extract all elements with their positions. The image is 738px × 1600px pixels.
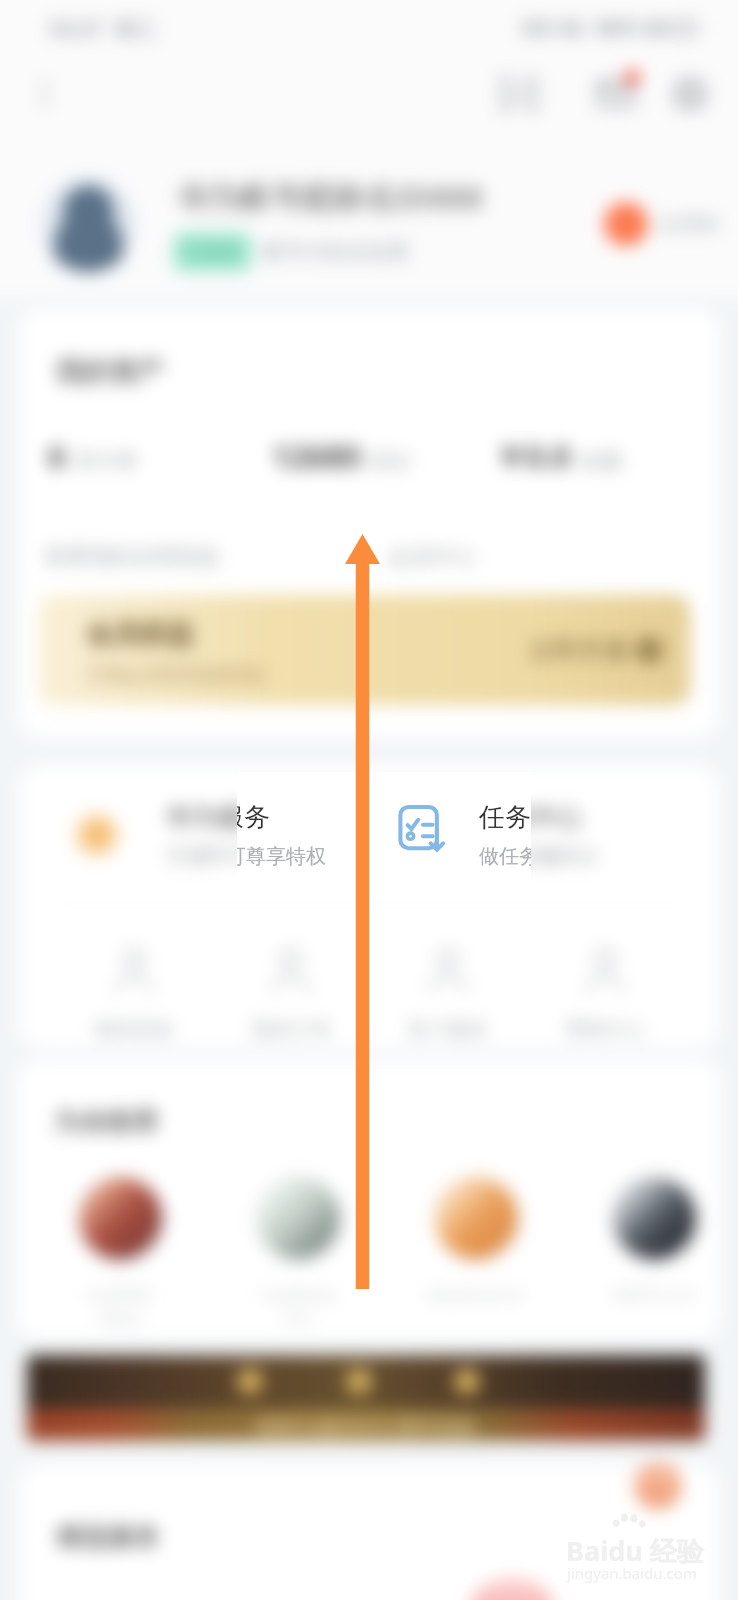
- staticText: 会员中心: [388, 543, 476, 571]
- staticText: 领券立减300元 限时抢购: [256, 1412, 476, 1439]
- staticText: jingyan.baidu.com: [567, 1563, 697, 1583]
- staticText: 为你推荐: [54, 1106, 158, 1139]
- button[interactable]: ￥0.0: [495, 435, 718, 477]
- button[interactable]: Settings: [664, 68, 716, 120]
- staticText: Baidu 经验: [566, 1532, 704, 1569]
- staticText: 余额: [580, 448, 622, 474]
- staticText: 6: [48, 435, 66, 477]
- staticText: 张卡券: [75, 448, 138, 474]
- staticText: 积分: [370, 448, 412, 474]
- button[interactable]: 618 promotion banner: [27, 1355, 705, 1441]
- staticText: 12680: [272, 435, 361, 477]
- staticText: 开通会员尊享超值特权: [86, 664, 266, 687]
- button[interactable]: FreeBuds Pro: [248, 1170, 348, 1329]
- staticText: 华为帐号昵称名ID888: [178, 176, 483, 218]
- staticText: 做任务赚积分: [479, 844, 599, 869]
- button[interactable]: 查看我的全部权益: [42, 543, 222, 571]
- staticText: 帮助中心: [565, 1017, 645, 1042]
- staticText: ￥0.0: [495, 435, 571, 477]
- button[interactable]: 华为服务: [20, 766, 369, 904]
- button[interactable]: 华为服务: [20, 766, 369, 904]
- staticText: 开通即可尊享特权: [166, 844, 326, 869]
- staticText: HD 4G WiFi 68: [521, 14, 668, 43]
- staticText: 华为服务: [166, 801, 270, 834]
- button[interactable]: 会员中心: [388, 543, 476, 571]
- staticText: 帐号与安全设置: [263, 239, 410, 265]
- staticText: 做任务赚积分: [479, 844, 599, 869]
- button[interactable]: 我的设备: [55, 941, 212, 1046]
- staticText: 我的资产: [56, 355, 164, 389]
- staticText: 10:27 周三: [46, 13, 158, 43]
- staticText: 任务中心: [479, 801, 583, 834]
- button[interactable]: 已实名: [184, 240, 241, 264]
- button[interactable]: 任务中心: [369, 766, 718, 904]
- button[interactable]: MatePad Air: [426, 1170, 526, 1306]
- staticText: 我的设备: [94, 1017, 174, 1042]
- button[interactable]: 6: [48, 435, 272, 477]
- staticText: 客户服务: [408, 1017, 488, 1042]
- button[interactable]: Scan code: [493, 68, 545, 120]
- button[interactable]: WATCH GT: [604, 1170, 704, 1306]
- staticText: HUAWEI Mate: [70, 1283, 170, 1329]
- button[interactable]: 客户服务: [369, 941, 526, 1046]
- staticText: 已实名: [184, 240, 241, 264]
- staticText: 华为服务: [166, 801, 270, 834]
- button[interactable]: Messages: [590, 68, 642, 120]
- button[interactable]: 12680: [272, 435, 495, 477]
- button[interactable]: 云空间: [604, 202, 718, 246]
- staticText: 开通即可尊享特权: [166, 844, 326, 869]
- button[interactable]: 会员权益: [38, 595, 690, 705]
- staticText: 立即开通: [528, 635, 628, 666]
- button[interactable]: Profile avatar: [41, 177, 136, 272]
- button[interactable]: 帮助中心: [526, 941, 683, 1046]
- staticText: 会员权益: [86, 617, 194, 651]
- staticText: 云空间: [658, 212, 718, 237]
- button[interactable]: 我的订单: [212, 941, 369, 1046]
- staticText: 任务中心: [479, 801, 583, 834]
- staticText: 查看我的全部权益: [44, 543, 220, 571]
- button[interactable]: 任务中心: [369, 766, 718, 904]
- button[interactable]: HUAWEI Mate: [70, 1170, 170, 1329]
- staticText: 精选服务: [56, 1521, 160, 1554]
